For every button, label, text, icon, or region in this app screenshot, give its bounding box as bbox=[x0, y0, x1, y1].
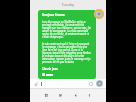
staticText: Bonjour Emma bbox=[42, 13, 65, 17]
button[interactable]: Contact avatar bbox=[94, 9, 104, 19]
staticText: Tuesday bbox=[30, 3, 106, 7]
staticText: Lors du voyage en BlaBlaCar qu'on a part… bbox=[42, 20, 92, 38]
button[interactable]: Insert emoji bbox=[88, 81, 94, 87]
button[interactable]: Home bbox=[57, 92, 64, 99]
button[interactable] bbox=[41, 79, 88, 88]
button[interactable]: Keyboard bbox=[86, 92, 93, 99]
staticText: Je suis vraiment mal à l'aise et envoyan… bbox=[42, 42, 92, 63]
staticText: Claude Jean bbox=[42, 67, 58, 71]
button[interactable]: Send message bbox=[96, 80, 103, 87]
button[interactable]: Recent apps bbox=[43, 92, 50, 99]
button[interactable]: Bonjour Emma bbox=[38, 10, 96, 79]
button[interactable]: Attach file bbox=[33, 81, 39, 87]
button[interactable]: Back bbox=[72, 92, 79, 99]
